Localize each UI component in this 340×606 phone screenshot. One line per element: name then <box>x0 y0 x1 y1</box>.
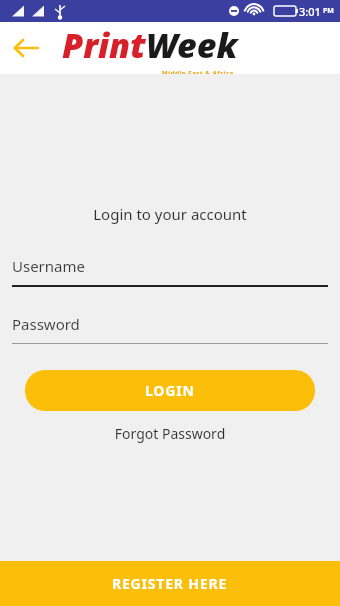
staticText: Password <box>12 314 80 334</box>
button[interactable]: Back <box>6 26 50 70</box>
staticText: Week <box>146 22 238 68</box>
staticText: Middle East & Africa <box>162 69 234 74</box>
staticText: Login to your account <box>0 204 340 224</box>
button[interactable]: Username <box>12 256 328 287</box>
staticText: Print <box>62 22 146 68</box>
staticText: Username <box>12 256 85 276</box>
button[interactable]: REGISTER HERE <box>0 561 340 606</box>
button[interactable]: LOGIN <box>25 370 315 411</box>
staticText: 3:01 <box>299 4 321 19</box>
button[interactable]: Forgot Password <box>0 424 340 443</box>
staticText: LOGIN <box>145 381 195 400</box>
button[interactable]: Password <box>12 314 328 344</box>
staticText: REGISTER HERE <box>112 574 228 593</box>
staticText: PM <box>323 6 334 16</box>
